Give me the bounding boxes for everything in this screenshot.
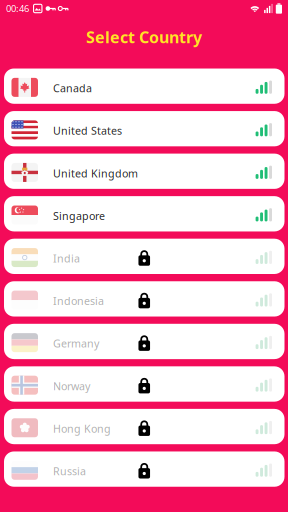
button[interactable]: Germany [4,324,284,359]
staticText: Singapore [53,209,105,223]
staticText: United Kingdom [53,166,138,180]
staticText: India [53,251,80,265]
button[interactable]: Russia [4,451,284,487]
staticText: Germany [53,336,99,351]
staticText: Select Country [86,26,202,48]
staticText: Norway [53,379,90,393]
button[interactable]: United States [4,111,284,146]
staticText: Canada [53,81,92,95]
button[interactable]: Norway [4,366,284,402]
staticText: United States [53,124,122,138]
button[interactable]: India [4,239,284,274]
button[interactable]: United Kingdom [4,154,284,189]
staticText: 00:46 [6,2,29,15]
button[interactable]: Indonesia [4,281,284,316]
button[interactable]: Canada [4,68,284,104]
staticText: Russia [53,464,86,478]
staticText: Indonesia [53,294,104,308]
button[interactable]: Singapore [4,196,284,231]
staticText: Hong Kong [53,421,111,436]
button[interactable]: Hong Kong [4,409,284,444]
